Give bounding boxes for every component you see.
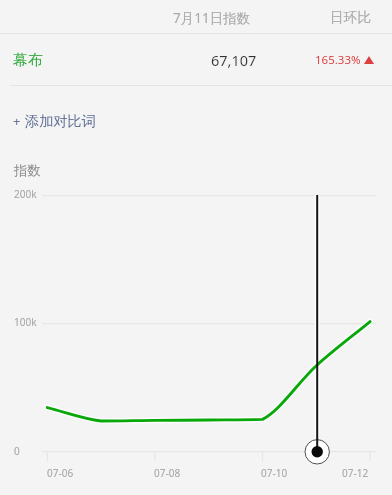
staticText: 200k	[14, 187, 37, 201]
staticText: 67,107	[211, 50, 257, 70]
button[interactable]: 幕布	[0, 34, 392, 85]
staticText: +	[13, 112, 21, 130]
staticText: 165.33%	[315, 52, 361, 68]
staticText: 07-12	[342, 466, 369, 480]
staticText: 07-10	[261, 466, 288, 480]
staticText: 添加对比词	[25, 112, 96, 130]
staticText: 指数	[14, 162, 41, 179]
staticText: 07-08	[154, 466, 181, 480]
button[interactable]: +	[13, 112, 96, 130]
staticText: 100k	[14, 315, 37, 329]
staticText: 07-06	[47, 466, 74, 480]
staticText: 日环比	[330, 9, 372, 26]
staticText: 7月11日指数	[173, 9, 251, 27]
staticText: 0	[14, 444, 20, 458]
staticText: 幕布	[13, 51, 43, 70]
